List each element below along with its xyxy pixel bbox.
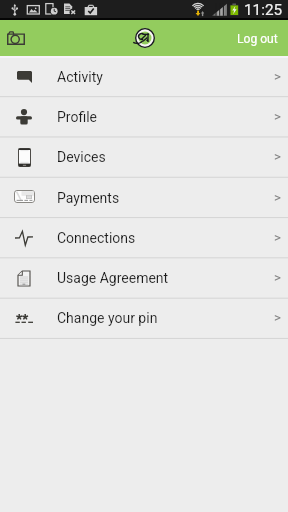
staticText: Change your pin: [57, 310, 158, 326]
button[interactable]: Devices: [0, 137, 288, 177]
staticText: Log out: [237, 32, 278, 46]
button[interactable]: Refresh: [135, 28, 155, 48]
staticText: >: [274, 230, 281, 245]
staticText: Activity: [57, 69, 103, 85]
staticText: 11:25: [244, 1, 283, 19]
button[interactable]: Connections: [0, 218, 288, 258]
staticText: Devices: [57, 149, 106, 165]
button[interactable]: Profile: [0, 97, 288, 137]
staticText: Profile: [57, 109, 98, 125]
staticText: >: [274, 270, 281, 285]
staticText: >: [274, 109, 281, 124]
staticText: Payments: [57, 190, 120, 206]
staticText: >: [274, 190, 281, 205]
staticText: >: [274, 310, 281, 325]
button[interactable]: Payments: [0, 178, 288, 218]
button[interactable]: Activity: [0, 57, 288, 97]
staticText: Usage Agreement: [57, 270, 169, 286]
button[interactable]: Change your pin: [0, 298, 288, 338]
staticText: Connections: [57, 230, 136, 246]
staticText: >: [274, 149, 281, 164]
button[interactable]: Usage Agreement: [0, 258, 288, 298]
button[interactable]: Camera: [7, 31, 25, 45]
staticText: >: [274, 69, 281, 84]
button[interactable]: Log out: [226, 26, 288, 50]
